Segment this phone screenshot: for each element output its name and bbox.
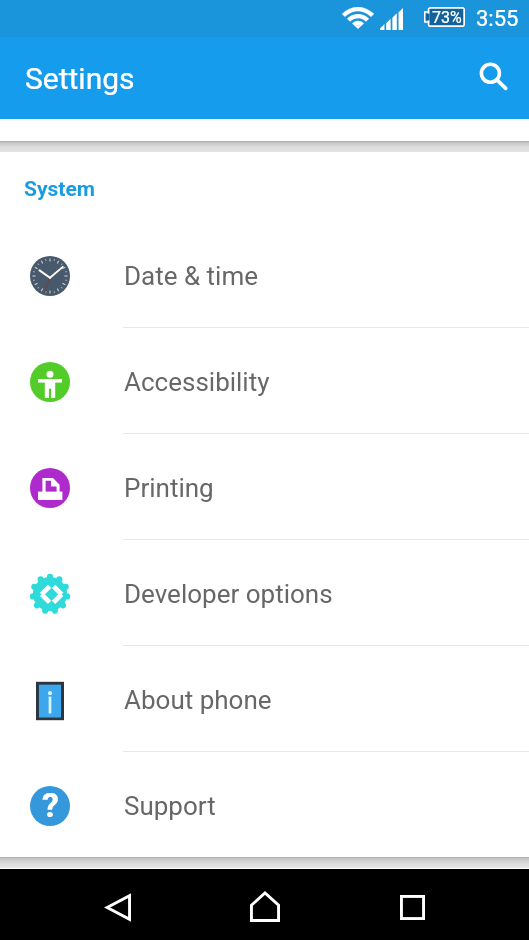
button[interactable]: Date & time [0,222,529,328]
staticText: Developer options [124,579,333,609]
staticText: System [24,177,95,202]
staticText: 73% [432,8,462,27]
button[interactable]: About phone [0,646,529,752]
button[interactable]: Back [90,879,146,935]
staticText: 3:55 [476,6,519,32]
button[interactable]: Accessibility [0,328,529,434]
staticText: About phone [124,685,272,715]
staticText: ? [42,785,59,825]
staticText: Date & time [124,261,258,291]
staticText: Settings [25,61,135,96]
button[interactable]: ? [0,752,529,857]
button[interactable]: Search [466,51,518,103]
button[interactable]: Printing [0,434,529,540]
button[interactable]: Home [237,878,293,934]
button[interactable]: Recents [384,879,440,935]
staticText: Accessibility [124,367,270,397]
staticText: Printing [124,473,214,503]
button[interactable]: Developer options [0,540,529,646]
staticText: Support [124,791,216,821]
